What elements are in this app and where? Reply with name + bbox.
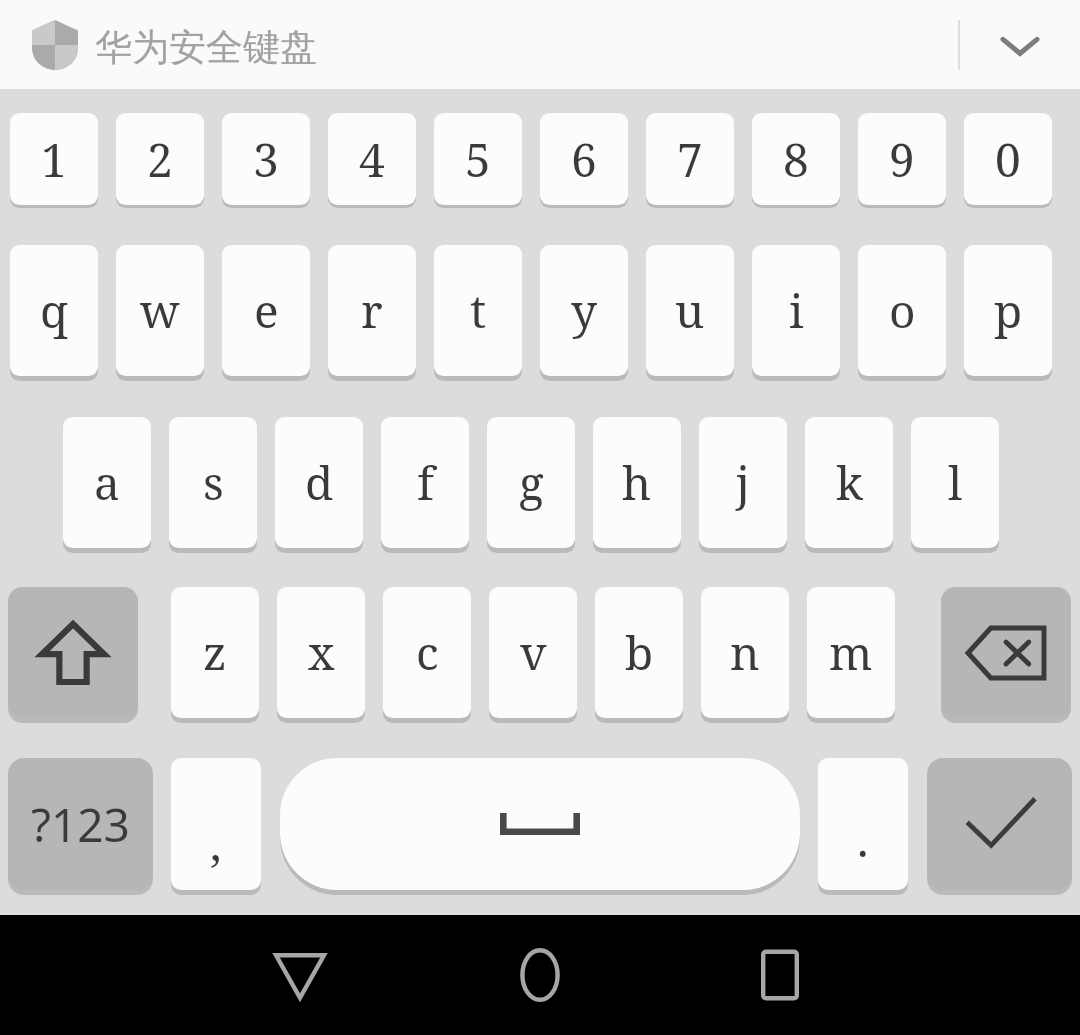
staticText: s: [203, 451, 224, 514]
button[interactable]: 2: [116, 113, 204, 205]
button[interactable]: q: [10, 245, 98, 376]
staticText: 1: [41, 128, 67, 191]
button[interactable]: y: [540, 245, 628, 376]
button[interactable]: w: [116, 245, 204, 376]
staticText: 6: [571, 128, 597, 191]
staticText: 0: [995, 128, 1021, 191]
staticText: w: [140, 279, 180, 342]
button[interactable]: v: [489, 587, 577, 718]
button[interactable]: c: [383, 587, 471, 718]
button[interactable]: 9: [858, 113, 946, 205]
button[interactable]: o: [858, 245, 946, 376]
staticText: .: [857, 808, 869, 871]
button[interactable]: r: [328, 245, 416, 376]
button[interactable]: ,: [171, 758, 261, 890]
button[interactable]: Shift: [8, 587, 138, 718]
button[interactable]: 8: [752, 113, 840, 205]
staticText: p: [994, 279, 1023, 342]
staticText: ?123: [31, 793, 130, 856]
staticText: 9: [889, 128, 915, 191]
staticText: 华为安全键盘: [95, 24, 317, 71]
button[interactable]: 1: [10, 113, 98, 205]
staticText: q: [40, 279, 69, 342]
button[interactable]: d: [275, 417, 363, 548]
button[interactable]: l: [911, 417, 999, 548]
button[interactable]: n: [701, 587, 789, 718]
button[interactable]: 0: [964, 113, 1052, 205]
staticText: m: [829, 621, 873, 684]
button[interactable]: p: [964, 245, 1052, 376]
staticText: 3: [253, 128, 279, 191]
button[interactable]: Recents: [730, 935, 830, 1015]
button[interactable]: Space: [280, 758, 800, 890]
button[interactable]: s: [169, 417, 257, 548]
button[interactable]: f: [381, 417, 469, 548]
button[interactable]: 3: [222, 113, 310, 205]
staticText: k: [836, 451, 863, 514]
button[interactable]: ?123: [8, 758, 153, 890]
button[interactable]: b: [595, 587, 683, 718]
staticText: u: [675, 279, 705, 342]
staticText: 2: [147, 128, 173, 191]
button[interactable]: t: [434, 245, 522, 376]
staticText: n: [730, 621, 760, 684]
staticText: e: [254, 279, 279, 342]
staticText: g: [519, 451, 544, 514]
button[interactable]: Home: [490, 935, 590, 1015]
staticText: 8: [783, 128, 809, 191]
staticText: 7: [677, 128, 703, 191]
staticText: 5: [465, 128, 491, 191]
button[interactable]: .: [818, 758, 908, 890]
staticText: a: [94, 451, 120, 514]
staticText: h: [622, 451, 652, 514]
button[interactable]: e: [222, 245, 310, 376]
button[interactable]: Delete: [941, 587, 1071, 718]
button[interactable]: h: [593, 417, 681, 548]
button[interactable]: Enter: [927, 758, 1072, 890]
staticText: d: [305, 451, 334, 514]
button[interactable]: Collapse keyboard: [986, 17, 1054, 73]
button[interactable]: j: [699, 417, 787, 548]
button[interactable]: z: [171, 587, 259, 718]
staticText: l: [948, 451, 963, 514]
button[interactable]: x: [277, 587, 365, 718]
button[interactable]: 6: [540, 113, 628, 205]
button[interactable]: g: [487, 417, 575, 548]
staticText: z: [203, 621, 227, 684]
staticText: 4: [359, 128, 385, 191]
staticText: r: [361, 279, 383, 342]
button[interactable]: 4: [328, 113, 416, 205]
button[interactable]: 5: [434, 113, 522, 205]
button[interactable]: i: [752, 245, 840, 376]
staticText: b: [625, 621, 654, 684]
staticText: o: [889, 279, 916, 342]
button[interactable]: a: [63, 417, 151, 548]
staticText: j: [736, 451, 750, 514]
button[interactable]: 7: [646, 113, 734, 205]
button[interactable]: Back: [250, 935, 350, 1015]
staticText: y: [571, 279, 597, 342]
button[interactable]: Secure keyboard: [32, 20, 78, 70]
staticText: t: [470, 279, 487, 342]
staticText: v: [520, 621, 547, 684]
staticText: i: [789, 279, 804, 342]
button[interactable]: u: [646, 245, 734, 376]
button[interactable]: k: [805, 417, 893, 548]
staticText: ,: [210, 812, 222, 875]
staticText: x: [308, 621, 335, 684]
button[interactable]: m: [807, 587, 895, 718]
staticText: f: [417, 451, 434, 514]
staticText: c: [416, 621, 439, 684]
